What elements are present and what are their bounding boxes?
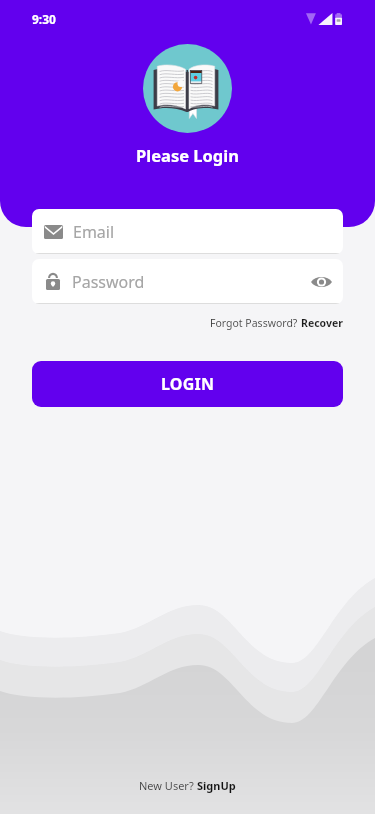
button[interactable]: Email: [32, 209, 343, 254]
staticText: Please Login: [136, 144, 239, 166]
button[interactable]: Password: [32, 259, 343, 304]
staticText: Password: [72, 271, 145, 293]
staticText: Email: [73, 221, 115, 243]
staticText: Recover: [301, 316, 343, 330]
button[interactable]: Forgot Password?: [210, 316, 375, 330]
staticText: LOGIN: [161, 373, 215, 395]
button[interactable]: Show password: [303, 264, 339, 300]
button[interactable]: New User?: [139, 778, 236, 793]
staticText: Forgot Password?: [210, 316, 301, 330]
staticText: SignUp: [197, 778, 236, 793]
staticText: New User?: [139, 778, 197, 793]
staticText: 9:30: [32, 11, 56, 27]
button[interactable]: LOGIN: [32, 361, 343, 407]
